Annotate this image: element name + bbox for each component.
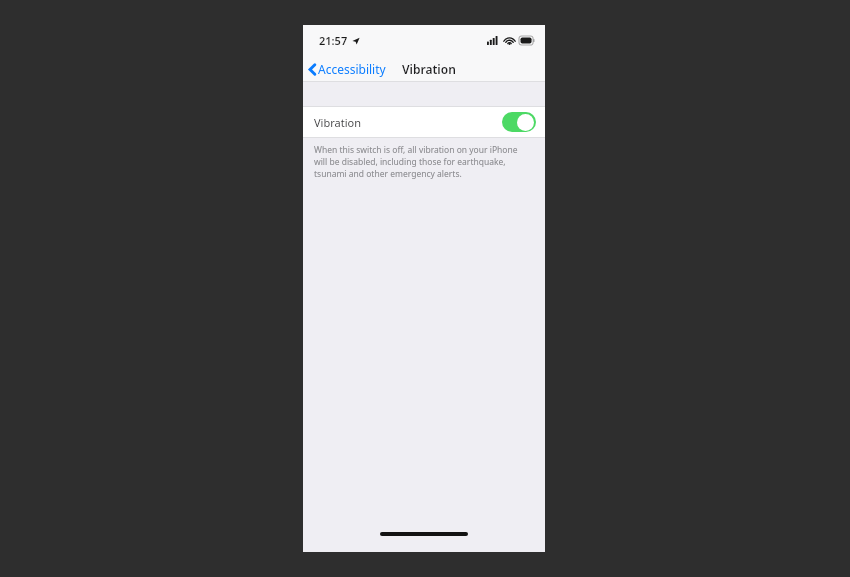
staticText: Vibration — [314, 115, 361, 130]
staticText: When this switch is off, all vibration o… — [314, 144, 531, 180]
button[interactable]: Accessibility — [303, 58, 392, 80]
button[interactable]: Vibration toggle — [502, 112, 536, 132]
staticText: 21:57 — [319, 33, 348, 48]
staticText: Accessibility — [318, 61, 386, 77]
button[interactable]: Vibration — [303, 107, 545, 137]
staticText: Vibration — [402, 61, 456, 77]
